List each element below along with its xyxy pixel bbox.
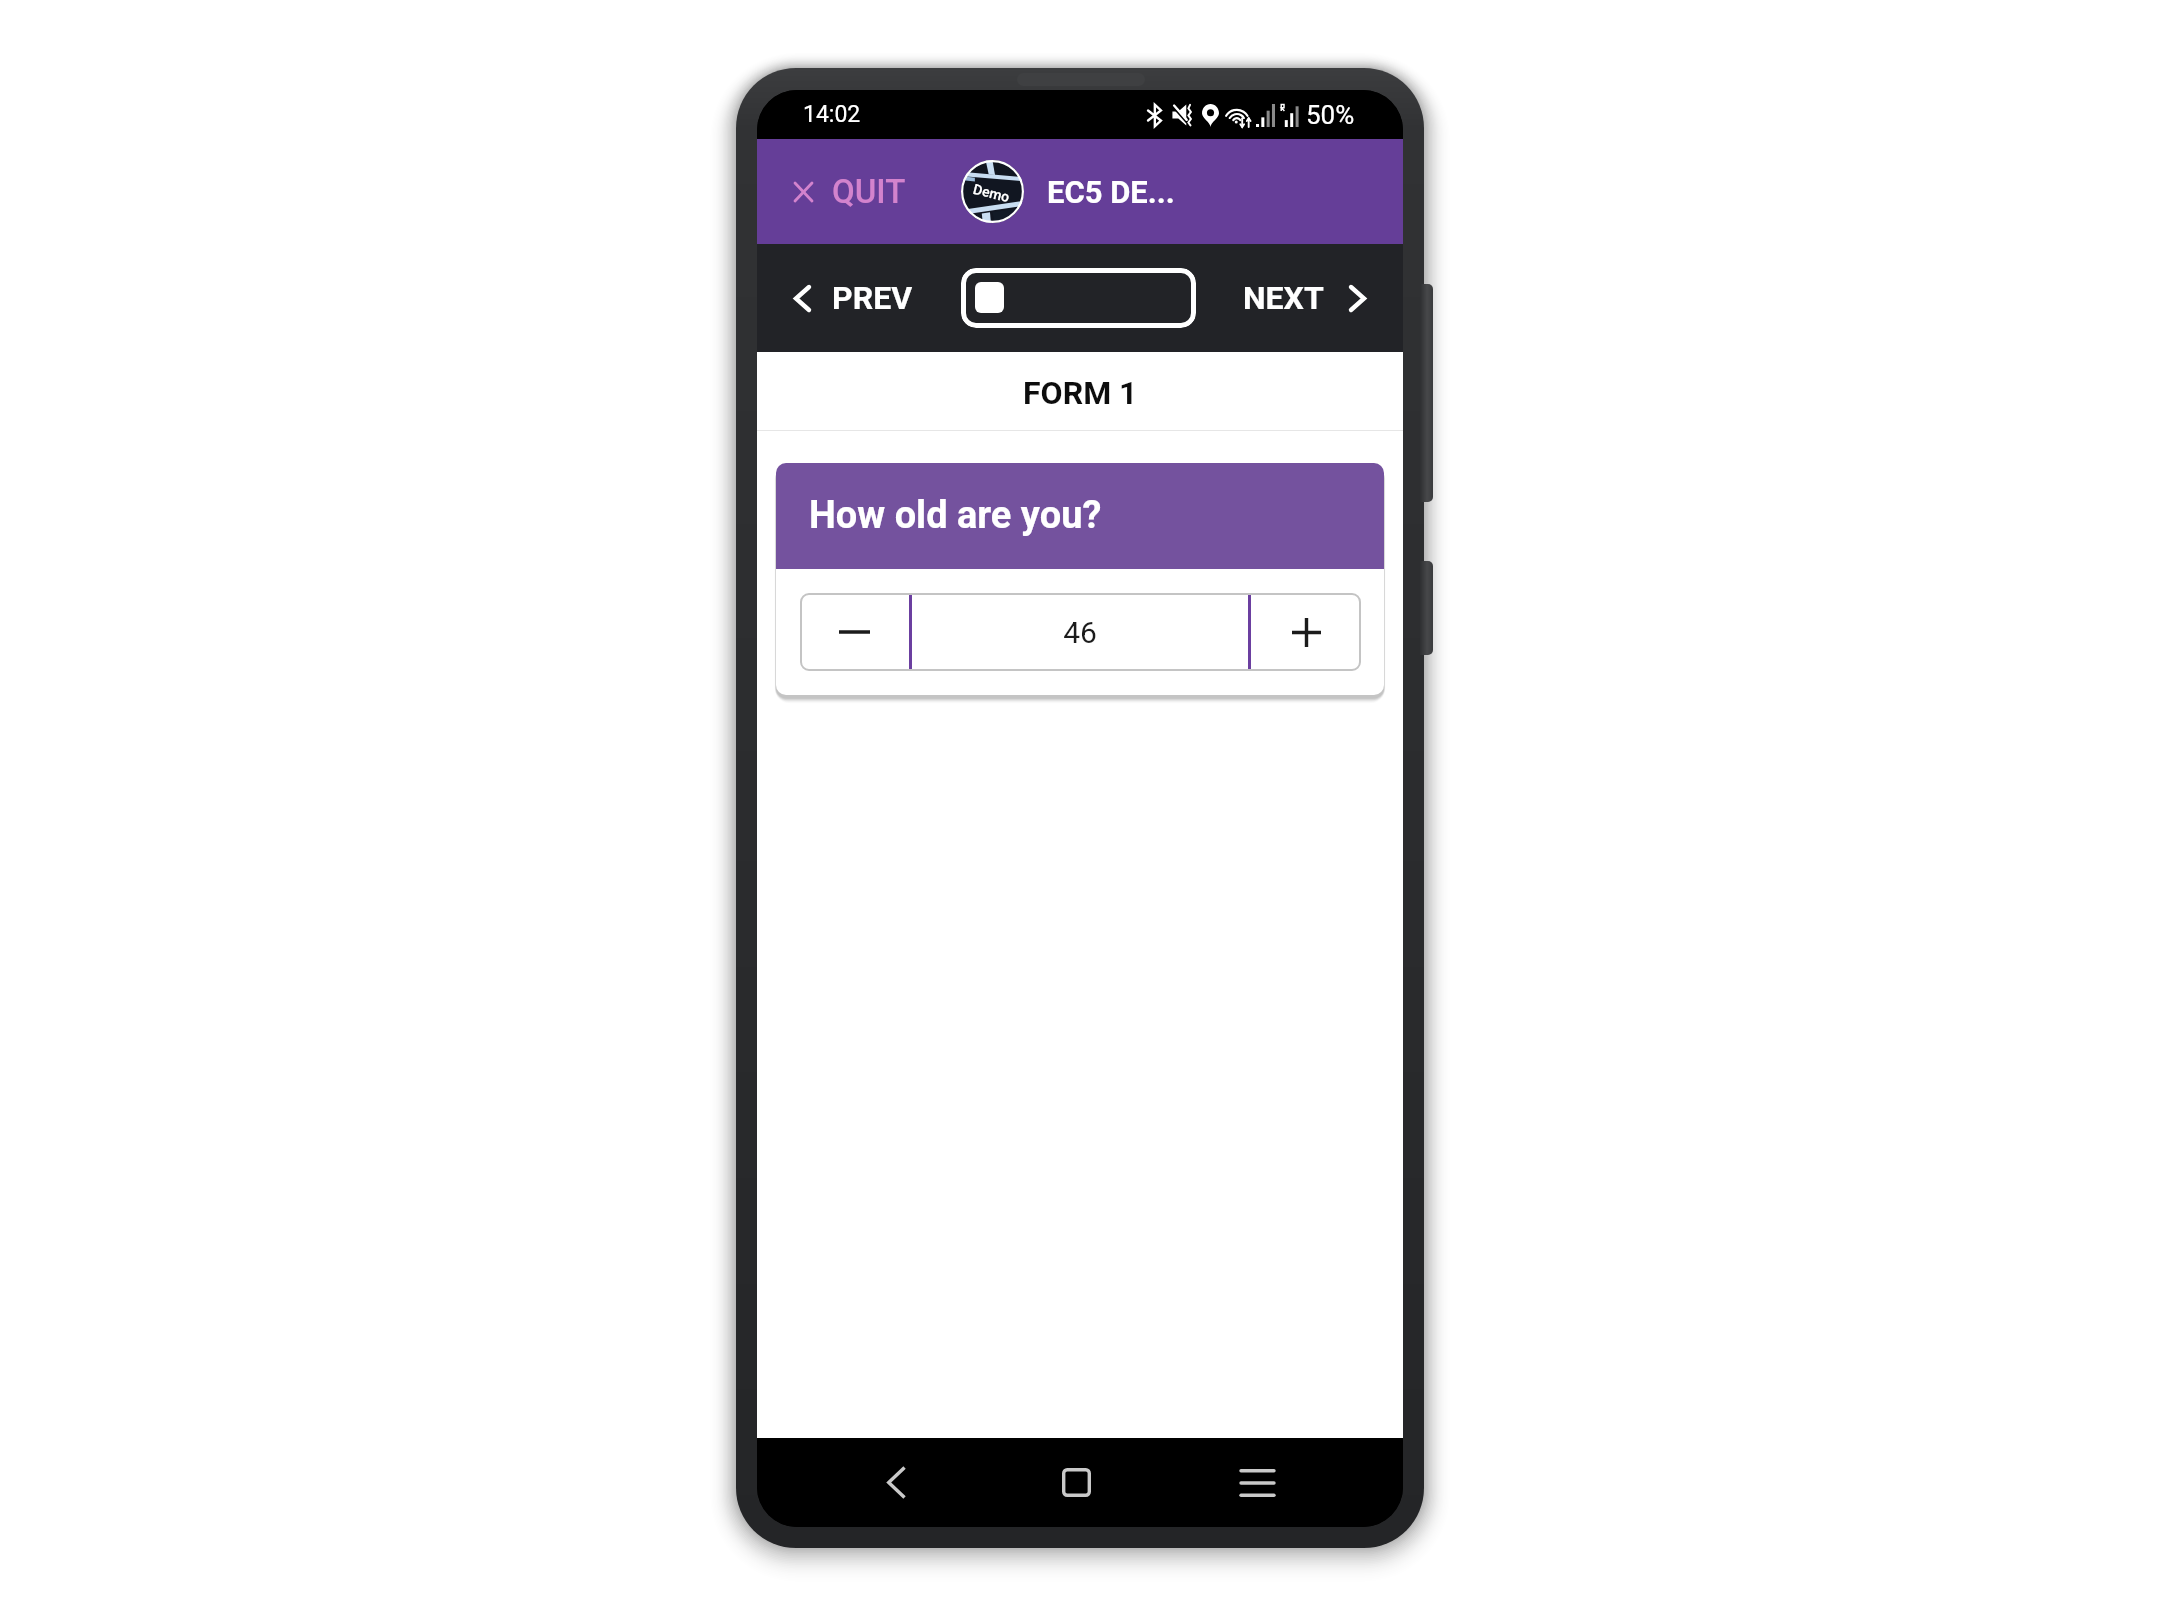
staticText: Demo xyxy=(972,181,1011,205)
button[interactable]: QUIT xyxy=(757,150,924,233)
button[interactable]: Recent apps xyxy=(1211,1438,1304,1527)
button[interactable]: NEXT xyxy=(1225,257,1403,339)
staticText: 46 xyxy=(1063,615,1097,650)
staticText: 14:02 xyxy=(803,101,861,128)
button[interactable]: Home xyxy=(1030,1438,1123,1527)
staticText: EC5 DE... xyxy=(1047,174,1175,210)
button[interactable]: Back xyxy=(849,1438,942,1527)
button[interactable]: Increase xyxy=(1251,593,1361,671)
staticText: 50% xyxy=(1306,100,1355,130)
staticText: PREV xyxy=(832,279,913,317)
staticText: QUIT xyxy=(832,172,906,211)
button[interactable]: PREV xyxy=(757,257,931,339)
staticText: FORM 1 xyxy=(1023,374,1138,412)
button[interactable]: Decrease xyxy=(800,593,909,671)
button[interactable]: Form progress xyxy=(961,268,1196,328)
staticText: NEXT xyxy=(1243,279,1324,317)
button[interactable]: Demo xyxy=(961,148,1175,235)
staticText: How old are you? xyxy=(809,493,1102,538)
